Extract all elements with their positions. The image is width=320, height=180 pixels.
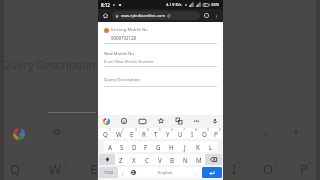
staticText: W: [49, 160, 62, 178]
staticText: G: [156, 143, 161, 151]
button[interactable]: More: [193, 117, 201, 125]
button[interactable]: B: [166, 154, 179, 165]
staticText: B: [170, 156, 175, 164]
button[interactable]: More options: [212, 12, 220, 20]
button[interactable]: 5: [150, 128, 162, 139]
button[interactable]: English: [139, 167, 192, 178]
button[interactable]: D: [128, 141, 140, 152]
button[interactable]: Voice input: [211, 117, 219, 125]
staticText: M: [196, 156, 202, 164]
button[interactable]: ?123: [99, 167, 118, 178]
staticText: 1: [109, 128, 111, 132]
staticText: V: [158, 156, 162, 164]
button[interactable]: Tabs: [202, 11, 211, 20]
staticText: N: [183, 156, 188, 164]
button[interactable]: 7: [174, 128, 186, 139]
button[interactable]: ,: [118, 167, 128, 178]
staticText: U: [178, 130, 183, 138]
button[interactable]: 3: [125, 128, 138, 139]
staticText: 5: [159, 128, 161, 132]
button[interactable]: K: [191, 141, 204, 152]
staticText: 9: [207, 128, 209, 132]
button[interactable]: Emoji: [157, 117, 165, 125]
button[interactable]: Google search: [102, 117, 110, 125]
button[interactable]: Enter: [202, 167, 222, 178]
staticText: New Mobile No: [104, 51, 135, 57]
staticText: 8:12: [101, 2, 110, 8]
button[interactable]: G: [152, 141, 165, 152]
staticText: 9: [275, 160, 278, 167]
staticText: •••: [262, 131, 268, 138]
staticText: J: [184, 143, 186, 151]
staticText: I: [232, 160, 237, 178]
staticText: 0: [309, 160, 312, 167]
button[interactable]: Translate: [175, 117, 183, 125]
button[interactable]: H: [165, 141, 178, 152]
staticText: ewa.njindiaonline.com: [121, 13, 166, 19]
button[interactable]: V: [153, 154, 166, 165]
staticText: X: [132, 156, 136, 164]
staticText: E: [90, 160, 98, 178]
button[interactable]: M: [192, 154, 205, 165]
button[interactable]: L: [204, 141, 217, 152]
staticText: Query Description: [2, 57, 96, 72]
button[interactable]: Shift: [99, 154, 115, 165]
staticText: •••: [194, 118, 200, 124]
button[interactable]: Home: [101, 11, 110, 20]
staticText: E: [130, 130, 134, 138]
staticText: 3: [135, 128, 137, 132]
button[interactable]: F: [140, 141, 152, 152]
button[interactable]: 9: [198, 128, 210, 139]
staticText: ,: [122, 169, 124, 176]
staticText: D: [132, 143, 137, 151]
button[interactable]: J: [178, 141, 191, 152]
staticText: O: [202, 130, 207, 138]
staticText: ?123: [104, 170, 114, 176]
button[interactable]: X: [127, 154, 140, 165]
button[interactable]: N: [179, 154, 192, 165]
staticText: W: [116, 130, 122, 138]
button[interactable]: 0: [210, 128, 222, 139]
staticText: 7: [183, 128, 185, 132]
staticText: T: [154, 130, 158, 138]
staticText: 1: [22, 160, 25, 167]
staticText: 4.19 K/s: [166, 2, 182, 8]
staticText: K: [196, 143, 200, 151]
staticText: O: [263, 160, 274, 178]
button[interactable]: A: [104, 141, 116, 152]
staticText: 0: [219, 128, 221, 132]
staticText: P: [300, 160, 308, 178]
staticText: H: [169, 143, 174, 151]
button[interactable]: 1: [99, 128, 112, 139]
staticText: 6: [171, 128, 173, 132]
staticText: Existing Mobile No: [111, 27, 148, 33]
staticText: 8: [195, 128, 197, 132]
button[interactable]: Backspace: [205, 154, 222, 165]
staticText: S: [120, 143, 124, 151]
button[interactable]: Z: [115, 154, 127, 165]
staticText: Q: [10, 160, 21, 178]
staticText: 2: [122, 128, 124, 132]
staticText: Q: [103, 130, 108, 138]
staticText: R: [142, 130, 146, 138]
staticText: 9069792128: [111, 35, 137, 41]
staticText: L: [209, 143, 213, 151]
button[interactable]: Change language: [128, 167, 139, 178]
staticText: Query Description: [104, 77, 140, 83]
staticText: .: [196, 169, 198, 176]
button[interactable]: 4: [138, 128, 150, 139]
button[interactable]: 2: [112, 128, 125, 139]
staticText: 8: [238, 160, 241, 167]
button[interactable]: 8: [186, 128, 198, 139]
button[interactable]: ewa.njindiaonline.com: [112, 11, 200, 20]
staticText: 35%: [211, 2, 220, 8]
button[interactable]: .: [192, 167, 202, 178]
staticText: F: [144, 143, 148, 151]
button[interactable]: 6: [162, 128, 174, 139]
button[interactable]: GIF: [138, 117, 146, 125]
button[interactable]: S: [116, 141, 128, 152]
staticText: Z: [119, 156, 123, 164]
button[interactable]: Stickers: [120, 117, 128, 125]
button[interactable]: C: [140, 154, 153, 165]
staticText: Enter New Mobile Number: [104, 59, 154, 64]
